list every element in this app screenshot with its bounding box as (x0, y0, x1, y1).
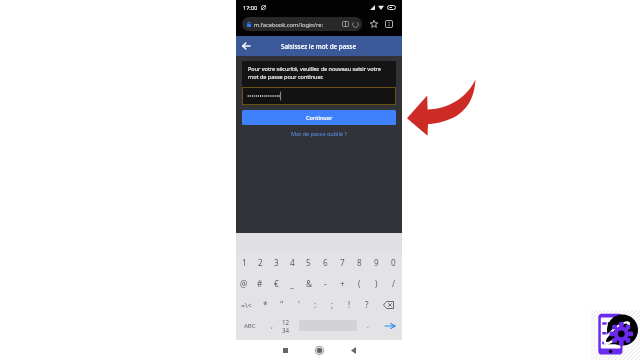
staticText: ' (298, 299, 300, 310)
staticText: Pour votre sécurité, veuillez de nouveau… (248, 65, 391, 81)
button[interactable] (242, 87, 396, 105)
button[interactable]: Recent apps (276, 341, 294, 359)
button[interactable]: ( (351, 273, 368, 294)
button[interactable]: * (257, 294, 273, 315)
button[interactable]: 4 (284, 252, 300, 273)
staticText: ABC (244, 322, 256, 330)
button[interactable]: 0 (385, 252, 402, 273)
button[interactable]: Mot de passe oublié ? (242, 127, 396, 139)
staticText: =\< (241, 300, 252, 310)
staticText: Continuer (306, 114, 333, 121)
button[interactable]: , (263, 315, 281, 336)
staticText: + (340, 278, 345, 289)
button[interactable]: / (385, 273, 402, 294)
button[interactable]: # (252, 273, 268, 294)
staticText: m.facebook.com/login/re: (254, 21, 323, 29)
staticText: 1 (242, 257, 247, 268)
button[interactable]: : (307, 294, 324, 315)
staticText: _ (290, 278, 294, 289)
staticText: / (392, 278, 396, 289)
staticText: , (271, 321, 273, 331)
button[interactable]: ! (341, 294, 358, 315)
button[interactable]: - (317, 273, 334, 294)
staticText: ; (331, 299, 334, 310)
staticText: Mot de passe oublié ? (291, 130, 347, 137)
staticText: 34 (282, 326, 290, 334)
button[interactable]: Customize and control (381, 17, 396, 31)
staticText: 7 (340, 257, 345, 268)
staticText: € (274, 278, 279, 289)
button[interactable]: 6 (317, 252, 334, 273)
button[interactable]: € (268, 273, 284, 294)
staticText: : (314, 299, 317, 310)
staticText: 12 (282, 318, 290, 326)
button[interactable]: Bookmark (366, 17, 381, 31)
staticText: " (280, 299, 284, 310)
staticText: 2 (258, 257, 263, 268)
staticText: ! (348, 299, 351, 310)
button[interactable]: " (273, 294, 290, 315)
button[interactable]: Continuer (242, 110, 396, 125)
button[interactable]: m.facebook.com/login/re: (242, 17, 362, 31)
button[interactable]: @ (236, 273, 252, 294)
button[interactable]: ; (324, 294, 341, 315)
staticText: @ (240, 278, 248, 289)
staticText: ) (375, 278, 378, 289)
staticText: # (257, 278, 263, 289)
button[interactable]: + (334, 273, 351, 294)
staticText: 3 (274, 257, 279, 268)
button[interactable]: ABC (237, 315, 263, 336)
button[interactable]: 1 (236, 252, 252, 273)
staticText: 0 (391, 257, 396, 268)
staticText: * (263, 299, 268, 310)
staticText: ? (365, 299, 369, 310)
staticText: 4 (290, 257, 295, 268)
staticText: 6 (323, 257, 328, 268)
button[interactable]: ? (358, 294, 375, 315)
button[interactable]: Backspace (375, 294, 402, 315)
staticText: & (306, 278, 312, 289)
button[interactable]: . (360, 315, 376, 336)
staticText: 5 (306, 257, 311, 268)
button[interactable]: 8 (351, 252, 368, 273)
staticText: Saisissez le mot de passe (281, 42, 357, 51)
staticText: . (367, 321, 369, 331)
staticText: 9 (374, 257, 379, 268)
button[interactable]: 7 (334, 252, 351, 273)
button[interactable]: Enter (378, 315, 401, 336)
staticText: 17:00 (243, 4, 258, 11)
button[interactable]: _ (284, 273, 300, 294)
button[interactable]: 9 (368, 252, 385, 273)
button[interactable]: Home (310, 341, 328, 359)
button[interactable]: ' (290, 294, 307, 315)
button[interactable]: 3 (268, 252, 284, 273)
button[interactable]: Back (344, 341, 362, 359)
button[interactable]: Back (236, 36, 256, 56)
button[interactable]: 2 (252, 252, 268, 273)
button[interactable]: =\< (236, 294, 257, 315)
button[interactable]: 12 (277, 315, 295, 336)
button[interactable]: 5 (300, 252, 317, 273)
button[interactable]: ) (368, 273, 385, 294)
staticText: 8 (357, 257, 362, 268)
staticText: ( (358, 278, 361, 289)
staticText: - (324, 278, 327, 289)
button[interactable]: & (300, 273, 317, 294)
